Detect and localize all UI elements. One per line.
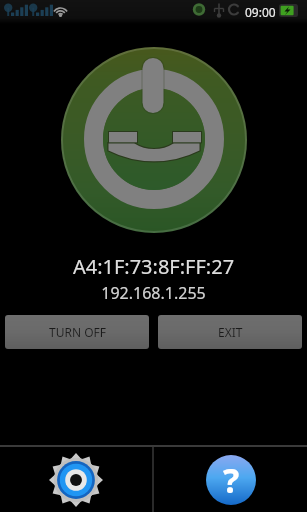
staticText: ? bbox=[223, 457, 240, 503]
button[interactable]: Help bbox=[154, 447, 307, 512]
button[interactable]: TURN OFF bbox=[5, 315, 149, 349]
staticText: 09:00 bbox=[245, 4, 276, 20]
staticText: EXIT bbox=[218, 324, 243, 340]
button[interactable]: Settings bbox=[0, 447, 152, 512]
staticText: TURN OFF bbox=[49, 324, 106, 340]
button[interactable]: EXIT bbox=[158, 315, 302, 349]
staticText: A4:1F:73:8F:FF:27 bbox=[0, 253, 307, 280]
staticText: 192.168.1.255 bbox=[0, 282, 307, 304]
